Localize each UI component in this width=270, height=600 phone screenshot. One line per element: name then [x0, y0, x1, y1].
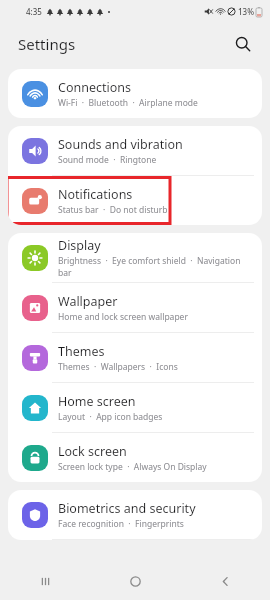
button[interactable]: Sounds and vibration — [8, 126, 262, 175]
staticText: Brightness · Eye comfort shield · Naviga… — [58, 255, 252, 279]
button[interactable]: Themes — [8, 333, 262, 382]
staticText: Wi-Fi · Bluetooth · Airplane mode — [58, 97, 198, 109]
button[interactable]: Recent apps — [0, 562, 90, 600]
staticText: Home and lock screen wallpaper — [58, 311, 188, 323]
staticText: Biometrics and security — [58, 500, 196, 517]
staticText: Connections — [58, 79, 131, 96]
button[interactable]: Wallpaper — [8, 283, 262, 332]
button[interactable]: Lock screen — [8, 433, 262, 482]
button[interactable]: Search — [230, 31, 256, 57]
button[interactable]: Back — [180, 562, 270, 600]
staticText: Notifications — [58, 186, 133, 203]
staticText: Wallpaper — [58, 293, 118, 310]
staticText: Home screen — [58, 393, 136, 410]
button[interactable]: Home screen — [8, 383, 262, 432]
button[interactable]: Connections — [8, 69, 262, 118]
staticText: Settings — [18, 34, 76, 54]
staticText: 13% — [238, 6, 254, 17]
staticText: Display — [58, 237, 101, 254]
staticText: Themes — [58, 343, 105, 360]
button[interactable]: Home — [90, 562, 180, 600]
staticText: Status bar · Do not disturb — [58, 204, 168, 216]
staticText: Themes · Wallpapers · Icons — [58, 361, 178, 373]
staticText: Layout · App icon badges — [58, 411, 163, 423]
staticText: 4:35 — [26, 6, 42, 17]
button[interactable]: Display — [8, 233, 262, 282]
button[interactable]: Biometrics and security — [8, 490, 262, 539]
button[interactable]: Notifications — [8, 176, 262, 225]
staticText: Screen lock type · Always On Display — [58, 461, 207, 473]
staticText: Sound mode · Ringtone — [58, 154, 157, 166]
staticText: Face recognition · Fingerprints — [58, 518, 184, 530]
staticText: Lock screen — [58, 443, 127, 460]
staticText: Sounds and vibration — [58, 136, 183, 153]
